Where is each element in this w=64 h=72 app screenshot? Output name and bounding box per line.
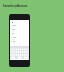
button[interactable] xyxy=(10,24,29,28)
button[interactable] xyxy=(10,28,29,32)
button[interactable] xyxy=(10,36,29,40)
button[interactable] xyxy=(10,40,29,44)
button[interactable]: Search xyxy=(10,21,29,24)
staticText: Favorite addresses xyxy=(3,4,28,8)
button[interactable] xyxy=(10,32,29,36)
